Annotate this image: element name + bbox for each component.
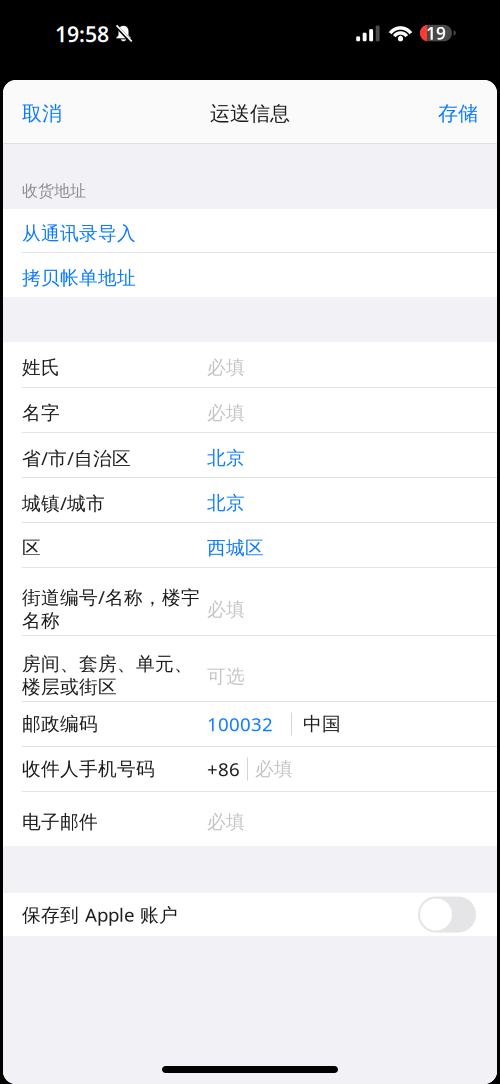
staticText: 区 [22, 536, 41, 559]
button[interactable]: 保存到 Apple 账户 [3, 893, 497, 936]
staticText: 名字 [22, 401, 60, 424]
staticText: 19:58 [55, 20, 109, 48]
staticText: 电子邮件 [22, 810, 98, 833]
staticText: 必填 [207, 598, 245, 621]
staticText: 取消 [22, 101, 62, 126]
staticText: 街道编号/名称，楼宇名称 [22, 585, 200, 632]
staticText: 必填 [255, 757, 293, 780]
button[interactable]: 房间、套房、单元、楼层或街区 [3, 636, 497, 702]
staticText: 北京 [207, 446, 245, 469]
button[interactable]: 取消 [3, 80, 74, 143]
staticText: 西城区 [207, 536, 264, 559]
staticText: 姓氏 [22, 356, 60, 379]
staticText: 存储 [438, 101, 478, 126]
button[interactable]: 名字 [3, 388, 497, 433]
button[interactable]: 街道编号/名称，楼宇名称 [3, 568, 497, 636]
button[interactable]: 存储 [426, 80, 497, 143]
staticText: 必填 [207, 401, 245, 424]
button[interactable]: 拷贝帐单地址 [3, 253, 497, 297]
staticText: 可选 [207, 665, 245, 688]
button[interactable]: 城镇/城市 [3, 478, 497, 523]
staticText: 中国 [303, 712, 341, 735]
staticText: 保存到 Apple 账户 [22, 902, 178, 927]
staticText: 必填 [207, 356, 245, 379]
staticText: 房间、套房、单元、楼层或街区 [22, 653, 193, 698]
button[interactable]: 区 [3, 523, 497, 568]
button[interactable]: 从通讯录导入 [3, 209, 497, 253]
button[interactable]: 电子邮件 [3, 792, 497, 846]
button[interactable]: 收件人手机号码 [3, 747, 497, 792]
staticText: 必填 [207, 810, 245, 833]
staticText: +86 [207, 757, 240, 781]
staticText: 邮政编码 [22, 712, 98, 735]
staticText: 从通讯录导入 [22, 222, 136, 245]
button[interactable]: 邮政编码 [3, 702, 497, 747]
staticText: 运送信息 [210, 101, 290, 126]
button[interactable]: 省/市/自治区 [3, 433, 497, 478]
staticText: 收货地址 [22, 181, 86, 201]
staticText: 省/市/自治区 [22, 446, 131, 470]
staticText: 收件人手机号码 [22, 757, 155, 780]
staticText: 拷贝帐单地址 [22, 266, 136, 289]
button[interactable]: 姓氏 [3, 342, 497, 388]
staticText: 100032 [207, 712, 273, 736]
staticText: 19 [426, 21, 446, 44]
staticText: 北京 [207, 491, 245, 514]
staticText: 城镇/城市 [22, 491, 105, 515]
